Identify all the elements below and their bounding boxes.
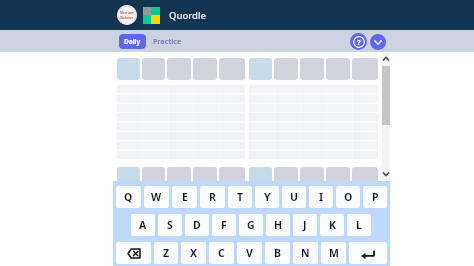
button[interactable]: C <box>209 242 234 264</box>
button[interactable]: Enter <box>349 242 387 264</box>
button[interactable]: K <box>320 214 344 236</box>
button[interactable]: Practice <box>151 34 184 49</box>
staticText: D <box>193 218 201 232</box>
staticText: F <box>221 218 227 232</box>
button[interactable]: I <box>309 186 333 208</box>
button[interactable]: Backspace <box>116 242 151 264</box>
staticText: ? <box>357 37 361 47</box>
staticText: E <box>182 190 188 204</box>
staticText: R <box>209 190 216 204</box>
button[interactable]: A <box>131 214 155 236</box>
staticText: Webster <box>120 16 134 20</box>
staticText: K <box>329 218 336 232</box>
staticText: C <box>218 246 225 260</box>
button[interactable]: Expand <box>370 34 386 50</box>
button[interactable]: L <box>347 214 371 236</box>
button[interactable]: O <box>336 186 360 208</box>
button[interactable]: H <box>266 214 290 236</box>
button[interactable]: E <box>172 186 197 208</box>
button[interactable]: F <box>212 214 236 236</box>
button[interactable]: P <box>363 186 387 208</box>
staticText: J <box>303 218 307 232</box>
staticText: Quordle <box>169 9 206 22</box>
button[interactable]: S <box>158 214 182 236</box>
staticText: Y <box>264 190 271 204</box>
button[interactable]: G <box>239 214 263 236</box>
button[interactable]: N <box>293 242 318 264</box>
button[interactable]: Y <box>255 186 279 208</box>
staticText: T <box>237 190 244 204</box>
staticText: G <box>247 218 255 232</box>
button[interactable]: D <box>185 214 209 236</box>
staticText: W <box>151 190 162 204</box>
staticText: N <box>301 246 310 260</box>
staticText: Merriam <box>120 11 134 15</box>
button[interactable]: B <box>265 242 290 264</box>
staticText: O <box>344 190 353 204</box>
button[interactable]: Daily <box>119 34 146 49</box>
staticText: M <box>329 246 339 260</box>
button[interactable]: U <box>282 186 306 208</box>
staticText: B <box>274 246 281 260</box>
button[interactable]: Help <box>350 33 367 50</box>
staticText: L <box>356 218 362 232</box>
staticText: S <box>167 218 173 232</box>
button[interactable]: Q <box>116 186 141 208</box>
button[interactable]: W <box>144 186 169 208</box>
staticText: Q <box>124 190 133 204</box>
staticText: A <box>139 218 147 232</box>
staticText: X <box>190 246 198 260</box>
staticText: I <box>319 190 324 204</box>
button[interactable]: X <box>181 242 206 264</box>
staticText: U <box>290 190 298 204</box>
button[interactable]: J <box>293 214 317 236</box>
staticText: V <box>246 246 253 260</box>
staticText: Daily <box>124 37 141 46</box>
button[interactable]: Z <box>154 242 178 264</box>
button[interactable]: R <box>200 186 225 208</box>
staticText: P <box>372 190 379 204</box>
staticText: Practice <box>153 37 182 47</box>
staticText: Z <box>163 246 170 260</box>
button[interactable]: V <box>237 242 262 264</box>
button[interactable]: T <box>228 186 252 208</box>
staticText: H <box>274 218 283 232</box>
button[interactable]: M <box>321 242 346 264</box>
